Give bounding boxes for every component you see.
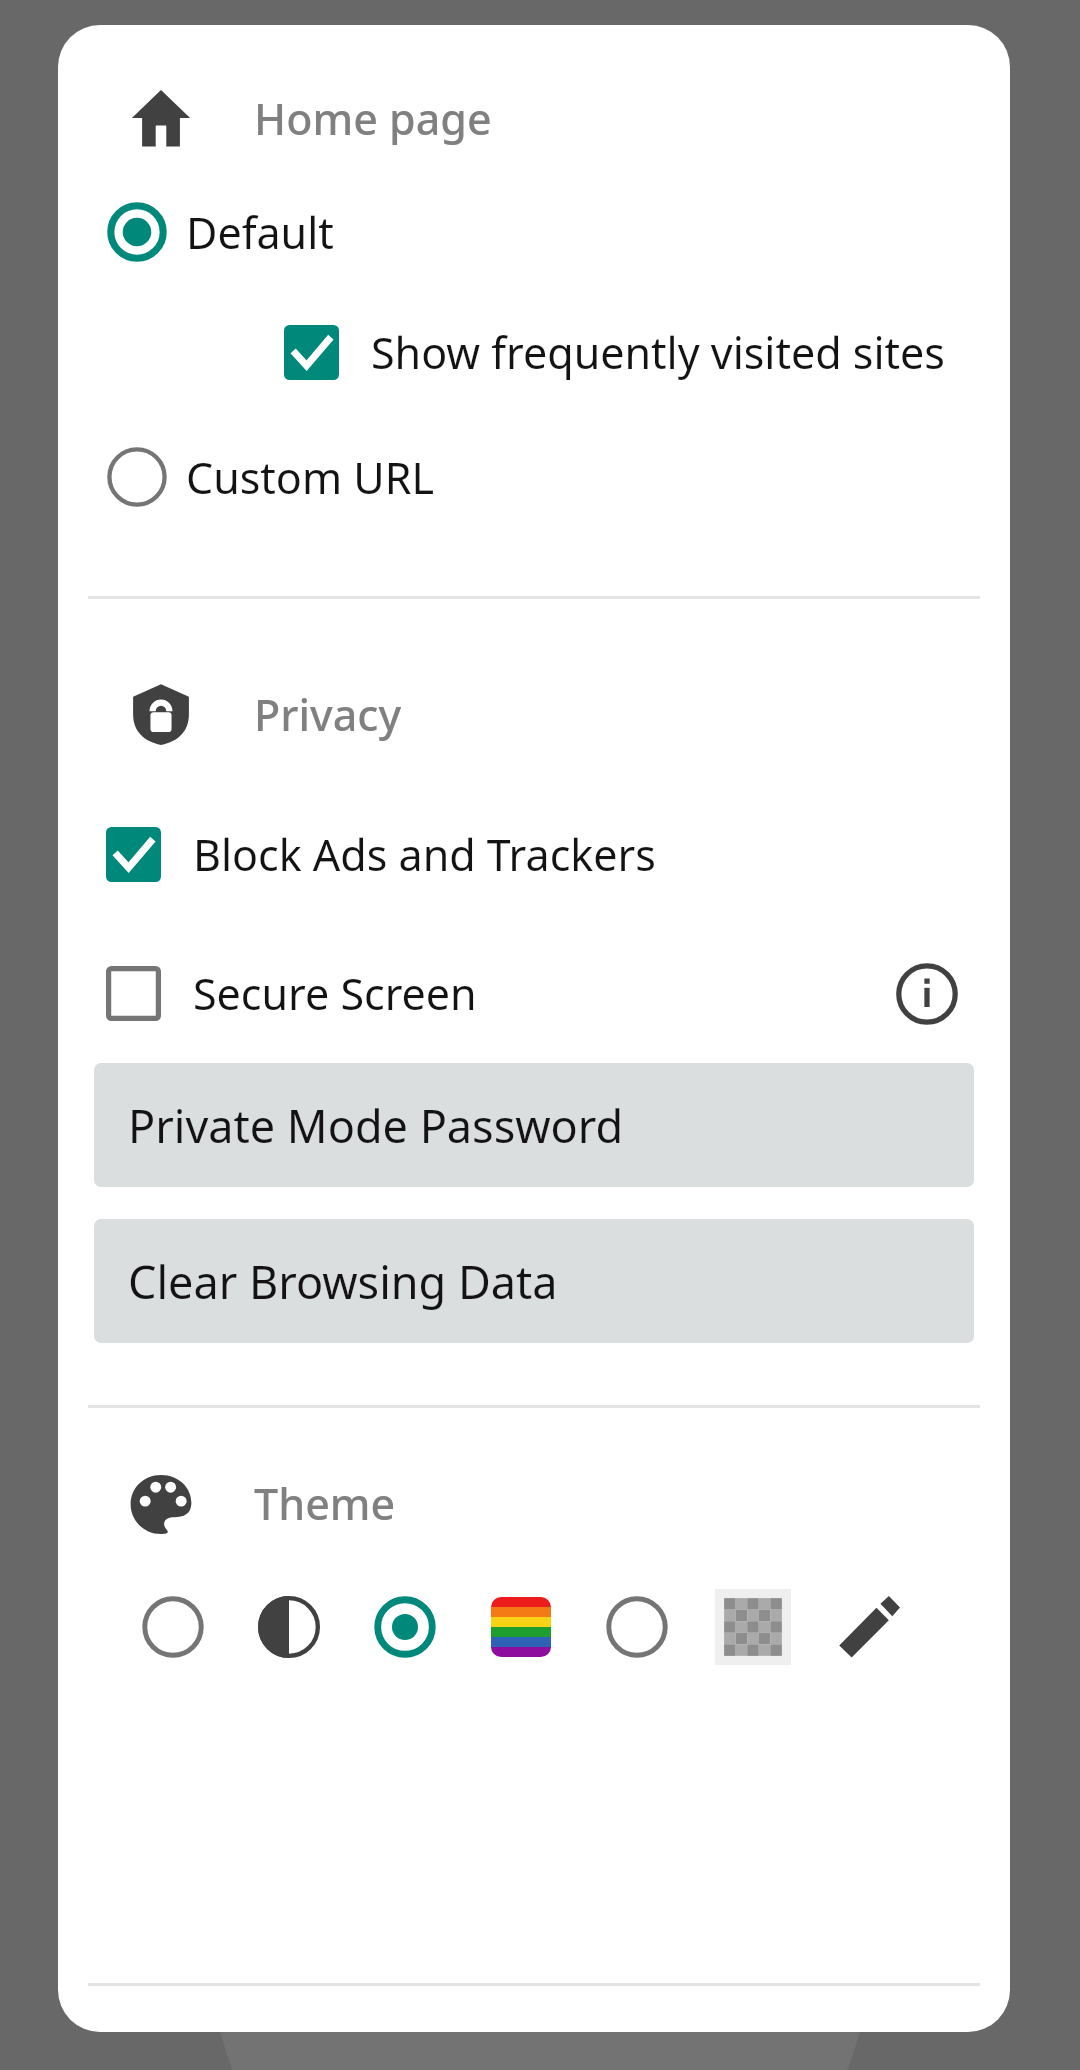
- button[interactable]: Private Mode Password: [94, 1063, 974, 1187]
- staticText: Privacy: [254, 685, 402, 744]
- button[interactable]: Light theme: [130, 1584, 216, 1670]
- button[interactable]: Rainbow theme: [478, 1584, 564, 1670]
- staticText: Clear Browsing Data: [128, 1251, 558, 1312]
- button[interactable]: Dark theme: [246, 1584, 332, 1670]
- button[interactable]: Clear Browsing Data: [94, 1219, 974, 1343]
- staticText: Block Ads and Trackers: [193, 825, 656, 884]
- staticText: Default: [186, 203, 334, 262]
- button[interactable]: Secure Screen info: [888, 955, 966, 1033]
- button[interactable]: Block Ads and Trackers: [58, 813, 1010, 896]
- staticText: Home page: [254, 89, 492, 148]
- button[interactable]: Secure Screen: [106, 952, 888, 1035]
- button[interactable]: Custom theme: [594, 1584, 680, 1670]
- button[interactable]: System theme, selected: [362, 1584, 448, 1670]
- staticText: Show frequently visited sites: [371, 323, 945, 382]
- staticText: Theme: [254, 1474, 396, 1533]
- staticText: Custom URL: [186, 448, 434, 507]
- button[interactable]: Default: [58, 189, 1010, 275]
- button[interactable]: Show frequently visited sites: [58, 313, 1010, 392]
- button[interactable]: Transparent theme: [710, 1584, 796, 1670]
- staticText: Secure Screen: [193, 964, 477, 1023]
- button[interactable]: Edit theme: [826, 1584, 912, 1670]
- button[interactable]: Custom URL: [58, 434, 1010, 520]
- staticText: Private Mode Password: [128, 1095, 624, 1156]
